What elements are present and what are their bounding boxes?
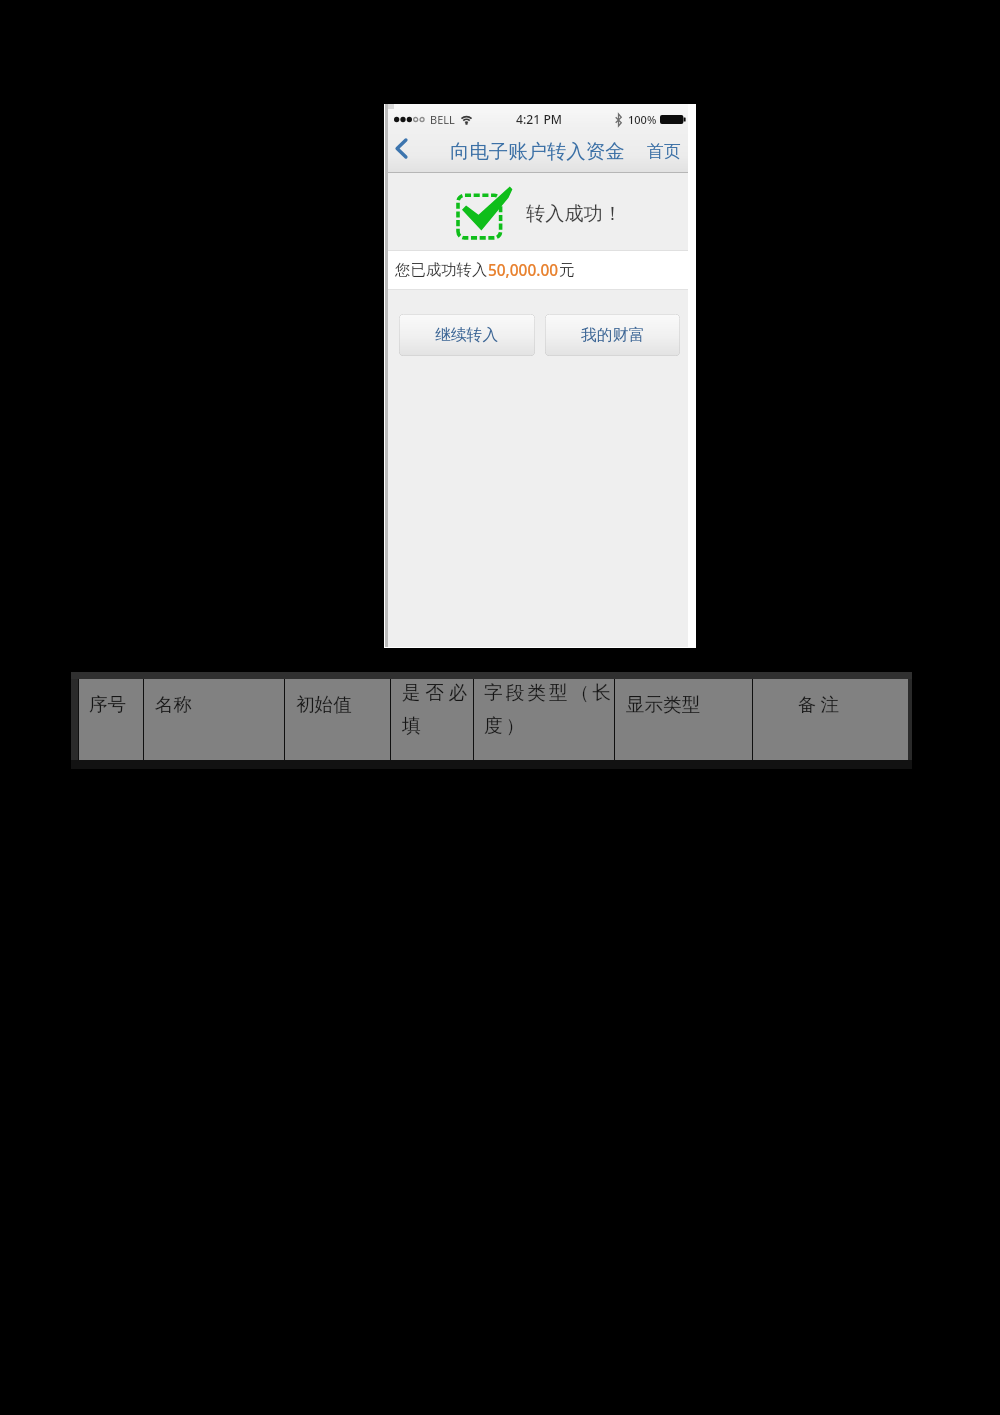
staticText: 向电子账户转入资金 [450, 139, 625, 163]
staticText: 转入成功！ [526, 202, 622, 226]
staticText: 序号 [89, 693, 127, 716]
button[interactable]: 继续转入 [399, 314, 535, 356]
staticText: 元 [559, 260, 575, 279]
button[interactable]: 我的财富 [545, 314, 680, 356]
staticText: BELL [430, 112, 455, 127]
staticText: 继续转入 [435, 325, 499, 345]
staticText: 100% [628, 112, 657, 127]
staticText: 备注 [798, 693, 843, 716]
staticText: 4:21 PM [516, 111, 563, 128]
staticText: 50,000.00 [488, 260, 559, 281]
button[interactable]: Back [388, 133, 421, 171]
staticText: 我的财富 [581, 325, 645, 345]
staticText: 是否必 填 [402, 681, 472, 737]
staticText: 初始值 [296, 693, 352, 716]
staticText: 名称 [155, 693, 193, 716]
staticText: 显示类型 [626, 693, 701, 716]
staticText: 您已成功转入 [395, 260, 488, 279]
staticText: 首页 [647, 141, 681, 162]
button[interactable]: 首页 [647, 141, 681, 162]
staticText: 字段类型（长 度） [484, 681, 614, 737]
